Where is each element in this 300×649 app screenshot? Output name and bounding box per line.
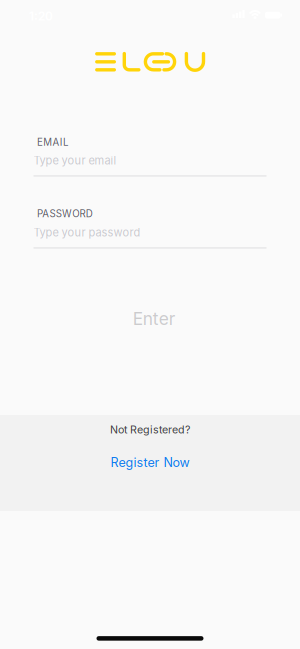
button[interactable]: Email bbox=[33, 154, 266, 176]
staticText: Type your password bbox=[33, 226, 140, 239]
staticText: Enter bbox=[133, 308, 176, 329]
staticText: Register Now bbox=[110, 455, 189, 470]
button[interactable]: Password bbox=[33, 226, 266, 248]
staticText: Not Registered? bbox=[110, 423, 190, 436]
staticText: Type your email bbox=[33, 154, 116, 167]
staticText: EMAIL bbox=[37, 136, 69, 148]
button[interactable]: Register Now bbox=[80, 448, 220, 476]
staticText: PASSWORD bbox=[37, 208, 93, 219]
button[interactable]: Enter bbox=[94, 302, 214, 336]
